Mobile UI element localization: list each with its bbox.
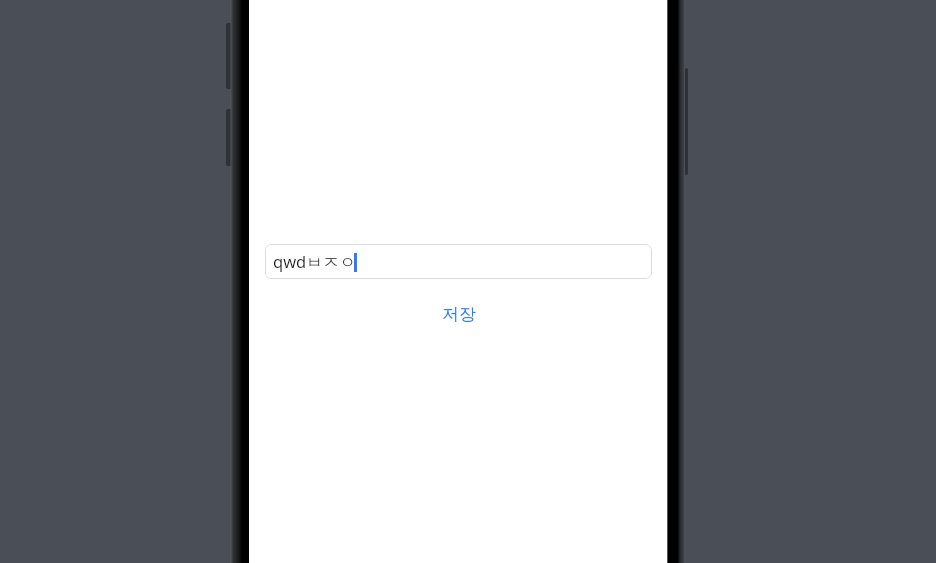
staticText: 저장: [442, 304, 476, 325]
button[interactable]: 저장: [430, 298, 487, 330]
staticText: qwdㅂㅈㅇ: [273, 250, 356, 273]
button[interactable]: qwdㅂㅈㅇ: [265, 244, 652, 279]
